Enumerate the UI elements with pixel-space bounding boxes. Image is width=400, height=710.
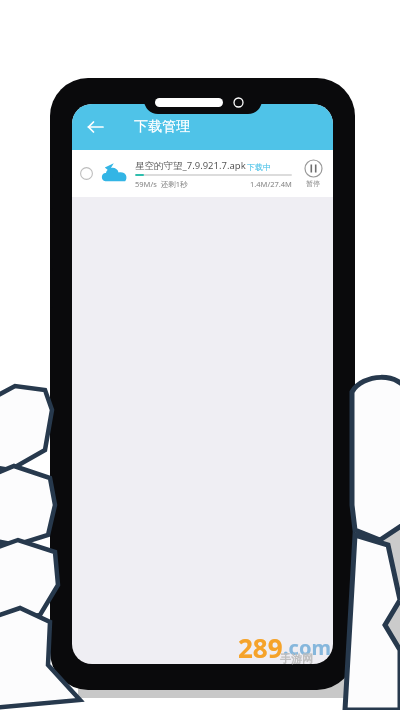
button[interactable]: Back	[78, 110, 112, 144]
staticText: 星空的守望_7.9.921.7.apk	[135, 159, 246, 172]
button[interactable]: Select	[80, 167, 93, 180]
staticText: 289	[238, 630, 283, 665]
staticText: 1.4M/27.4M	[250, 179, 292, 189]
button[interactable]: Select	[72, 150, 333, 197]
staticText: 暂停	[306, 179, 320, 188]
button[interactable]: Pause	[296, 159, 330, 188]
staticText: 下载中	[247, 162, 271, 172]
staticText: 下载管理	[134, 118, 190, 136]
staticText: 59M/s 还剩1秒	[135, 179, 188, 189]
staticText: .com	[283, 634, 331, 661]
staticText: 手游网	[280, 652, 313, 666]
